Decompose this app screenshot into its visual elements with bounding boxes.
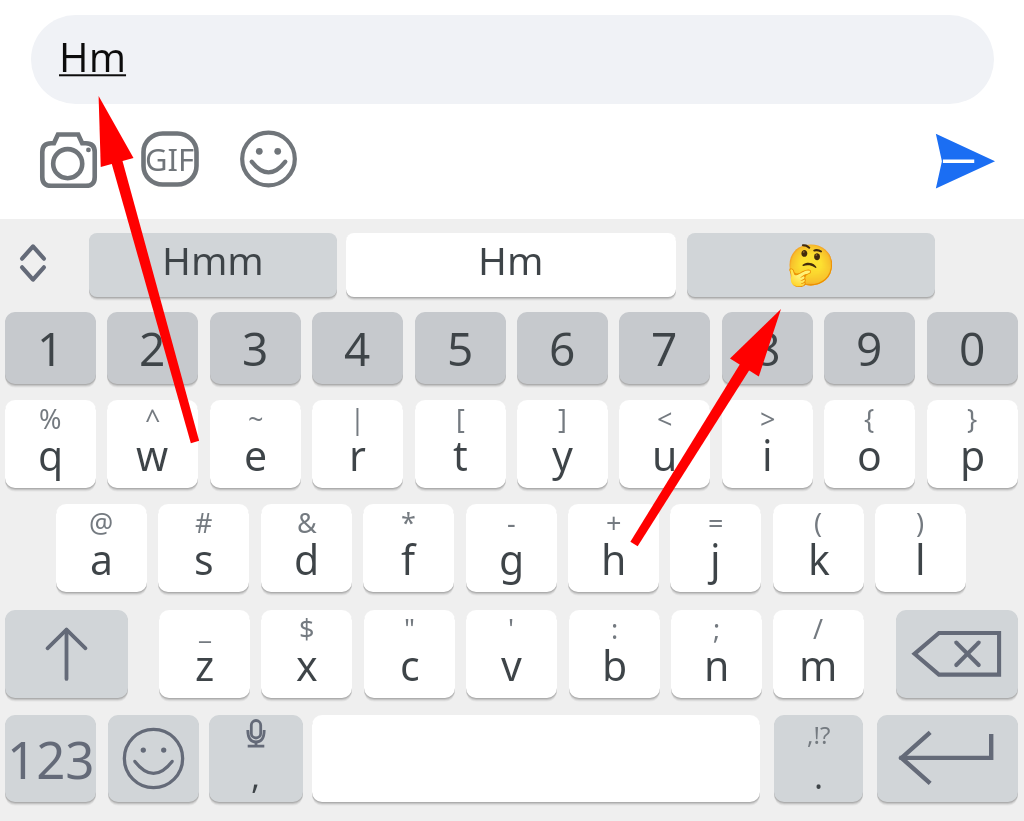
button[interactable]: Hmm	[89, 233, 337, 297]
button[interactable]: +	[568, 504, 659, 592]
button[interactable]: ~	[210, 400, 301, 488]
button[interactable]: [	[415, 400, 506, 488]
button[interactable]: $	[261, 610, 352, 698]
staticText: |	[350, 400, 365, 437]
button[interactable]: Hm	[31, 15, 994, 104]
button[interactable]: 1	[5, 312, 96, 384]
button[interactable]: {	[824, 400, 915, 488]
button[interactable]: *	[363, 504, 454, 592]
staticText: m	[799, 637, 838, 693]
staticText: ,!?	[807, 718, 831, 751]
button[interactable]: 2	[107, 312, 198, 384]
button[interactable]: 0	[927, 312, 1018, 384]
button[interactable]: 123	[5, 715, 96, 802]
staticText: $	[299, 610, 315, 647]
staticText: %	[39, 400, 62, 437]
button[interactable]: 6	[517, 312, 608, 384]
staticText: t	[453, 427, 468, 483]
staticText: i	[762, 427, 773, 483]
button[interactable]: GIF	[141, 131, 199, 187]
button[interactable]: :	[569, 610, 660, 698]
button[interactable]: /	[773, 610, 864, 698]
staticText: :	[611, 610, 619, 647]
button[interactable]: _	[159, 610, 250, 698]
button[interactable]: @	[56, 504, 147, 592]
button[interactable]: )	[875, 504, 966, 592]
button[interactable]: Send	[932, 132, 996, 190]
button[interactable]: ;	[671, 610, 762, 698]
button[interactable]: |	[312, 400, 403, 488]
staticText: <	[657, 400, 673, 437]
staticText: &	[297, 504, 317, 541]
button[interactable]: 8	[722, 312, 813, 384]
button[interactable]: 7	[619, 312, 710, 384]
staticText: [	[456, 400, 465, 437]
button[interactable]: ^	[107, 400, 198, 488]
button[interactable]: Expand suggestions	[20, 245, 46, 281]
staticText: .	[814, 753, 824, 799]
staticText: 1	[37, 317, 64, 380]
staticText: v	[501, 637, 522, 693]
button[interactable]: 3	[210, 312, 301, 384]
staticText: u	[652, 427, 678, 483]
button[interactable]: Enter	[877, 715, 1018, 802]
button[interactable]: #	[158, 504, 249, 592]
button[interactable]: Camera	[40, 132, 97, 188]
staticText: b	[602, 637, 628, 693]
staticText: h	[601, 531, 627, 587]
staticText: /	[813, 610, 824, 647]
staticText: x	[296, 637, 318, 693]
button[interactable]: "	[364, 610, 455, 698]
button[interactable]: &	[261, 504, 352, 592]
staticText: Hm	[59, 29, 127, 83]
button[interactable]: }	[927, 400, 1018, 488]
button[interactable]: -	[466, 504, 557, 592]
button[interactable]: <	[619, 400, 710, 488]
staticText: =	[708, 504, 724, 541]
button[interactable]: >	[722, 400, 813, 488]
button[interactable]: Shift	[5, 610, 128, 698]
button[interactable]: Emoji	[240, 131, 297, 187]
staticText: _	[199, 610, 211, 647]
button[interactable]: 5	[415, 312, 506, 384]
staticText: p	[960, 427, 986, 483]
button[interactable]: Emoji	[108, 715, 199, 802]
button[interactable]: '	[466, 610, 557, 698]
staticText: {	[864, 400, 875, 437]
button[interactable]: %	[5, 400, 96, 488]
button[interactable]: (	[773, 504, 864, 592]
staticText: 6	[549, 317, 576, 380]
staticText: 5	[447, 317, 474, 380]
button[interactable]: Punctuation	[774, 715, 863, 802]
button[interactable]: 9	[824, 312, 915, 384]
button[interactable]: 4	[312, 312, 403, 384]
staticText: '	[508, 610, 515, 647]
staticText: ^	[145, 400, 161, 437]
staticText: 3	[242, 317, 269, 380]
staticText: 2	[139, 317, 166, 380]
staticText: 4	[344, 317, 371, 380]
staticText: z	[195, 637, 215, 693]
staticText: Hmm	[162, 233, 264, 286]
staticText: 0	[959, 317, 986, 380]
button[interactable]: Backspace	[896, 610, 1018, 698]
staticText: e	[244, 427, 268, 483]
staticText: >	[760, 400, 776, 437]
button[interactable]: Voice input	[209, 715, 303, 802]
button[interactable]: Hm	[346, 233, 676, 297]
staticText: 🤔	[786, 242, 836, 289]
staticText: #	[195, 504, 213, 541]
button[interactable]: =	[670, 504, 761, 592]
staticText: "	[404, 610, 416, 647]
button[interactable]: 🤔	[687, 233, 935, 297]
staticText: 8	[754, 317, 781, 380]
staticText: }	[967, 400, 978, 437]
staticText: j	[710, 531, 721, 587]
staticText: )	[916, 504, 925, 541]
staticText: @	[89, 504, 114, 541]
staticText: g	[499, 531, 525, 587]
staticText: f	[401, 531, 416, 587]
button[interactable]: ]	[517, 400, 608, 488]
staticText: ;	[713, 610, 721, 647]
